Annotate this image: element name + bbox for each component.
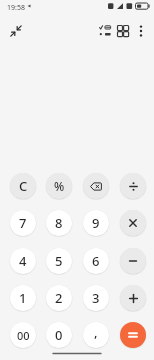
staticText: 5 bbox=[55, 252, 63, 270]
button[interactable]: 4 bbox=[10, 248, 36, 274]
staticText: 0 bbox=[55, 326, 63, 344]
staticText: 19:58 bbox=[7, 3, 25, 13]
button[interactable] bbox=[117, 25, 129, 37]
staticText: 8 bbox=[55, 214, 63, 232]
button[interactable]: 0 bbox=[46, 322, 72, 348]
button[interactable]: 6 bbox=[83, 248, 109, 274]
button[interactable]: , bbox=[83, 322, 109, 348]
staticText: 7 bbox=[19, 214, 27, 232]
button[interactable] bbox=[99, 25, 111, 37]
button[interactable]: 3 bbox=[83, 285, 109, 311]
button[interactable] bbox=[120, 322, 146, 348]
button[interactable]: 2 bbox=[46, 285, 72, 311]
staticText: % bbox=[54, 178, 65, 194]
button[interactable] bbox=[120, 285, 146, 311]
button[interactable]: 7 bbox=[10, 210, 36, 236]
staticText: , bbox=[94, 323, 98, 341]
button[interactable]: 9 bbox=[83, 210, 109, 236]
button[interactable] bbox=[136, 25, 146, 37]
staticText: 1 bbox=[19, 289, 27, 307]
button[interactable]: 00 bbox=[10, 322, 36, 348]
staticText: 2 bbox=[55, 289, 63, 307]
staticText: 4 bbox=[19, 252, 27, 270]
button[interactable]: 1 bbox=[10, 285, 36, 311]
staticText: C bbox=[19, 177, 28, 195]
button[interactable] bbox=[8, 23, 24, 39]
button[interactable]: 5 bbox=[46, 248, 72, 274]
button[interactable] bbox=[120, 173, 146, 199]
staticText: 9 bbox=[92, 214, 100, 232]
button[interactable]: C bbox=[10, 173, 36, 199]
staticText: 6 bbox=[92, 252, 100, 270]
button[interactable]: 8 bbox=[46, 210, 72, 236]
button[interactable] bbox=[83, 173, 109, 199]
staticText: 00 bbox=[17, 328, 30, 343]
button[interactable] bbox=[120, 210, 146, 236]
button[interactable] bbox=[120, 248, 146, 274]
staticText: 3 bbox=[92, 289, 100, 307]
button[interactable]: % bbox=[46, 173, 72, 199]
